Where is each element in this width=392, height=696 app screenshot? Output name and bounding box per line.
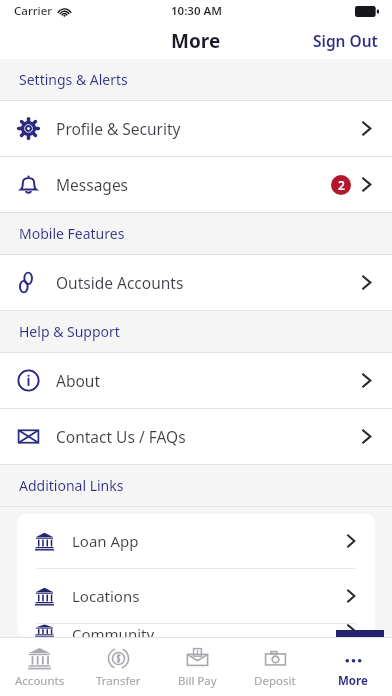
button[interactable]: Locations bbox=[17, 569, 375, 623]
staticText: Mobile Features bbox=[19, 224, 125, 243]
staticText: Deposit bbox=[254, 673, 296, 689]
button[interactable]: Profile & Security bbox=[0, 101, 392, 156]
button[interactable]: About bbox=[0, 353, 392, 408]
button[interactable]: Transfer bbox=[79, 638, 158, 696]
button[interactable]: More bbox=[314, 638, 392, 696]
staticText: Bill Pay bbox=[178, 673, 217, 689]
button[interactable]: Accounts bbox=[0, 638, 79, 696]
button[interactable]: Contact Us / FAQs bbox=[0, 409, 392, 464]
staticText: Sign Out bbox=[313, 30, 378, 51]
staticText: Accounts bbox=[15, 673, 65, 689]
button[interactable]: Community bbox=[17, 624, 375, 637]
staticText: Transfer bbox=[96, 673, 141, 689]
button[interactable]: Bill Pay bbox=[158, 638, 236, 696]
staticText: Carrier bbox=[14, 3, 53, 19]
staticText: Contact Us / FAQs bbox=[56, 426, 186, 447]
staticText: 10:30 AM bbox=[171, 3, 222, 19]
staticText: More bbox=[171, 28, 221, 54]
staticText: 2 bbox=[338, 177, 345, 193]
staticText: More bbox=[338, 673, 368, 689]
staticText: Outside Accounts bbox=[56, 272, 184, 293]
staticText: Community bbox=[72, 624, 155, 637]
button[interactable]: Deposit bbox=[236, 638, 314, 696]
staticText: Locations bbox=[72, 586, 140, 606]
staticText: About bbox=[56, 370, 100, 391]
button[interactable]: Sign Out bbox=[299, 23, 392, 58]
staticText: Messages bbox=[56, 174, 129, 195]
button[interactable]: Loan App bbox=[17, 514, 375, 568]
button[interactable]: Messages bbox=[0, 157, 392, 212]
button[interactable]: Outside Accounts bbox=[0, 255, 392, 310]
staticText: Help & Support bbox=[19, 322, 120, 341]
staticText: Loan App bbox=[72, 531, 139, 551]
staticText: Settings & Alerts bbox=[19, 70, 128, 89]
staticText: Profile & Security bbox=[56, 118, 181, 139]
staticText: Additional Links bbox=[19, 476, 124, 495]
